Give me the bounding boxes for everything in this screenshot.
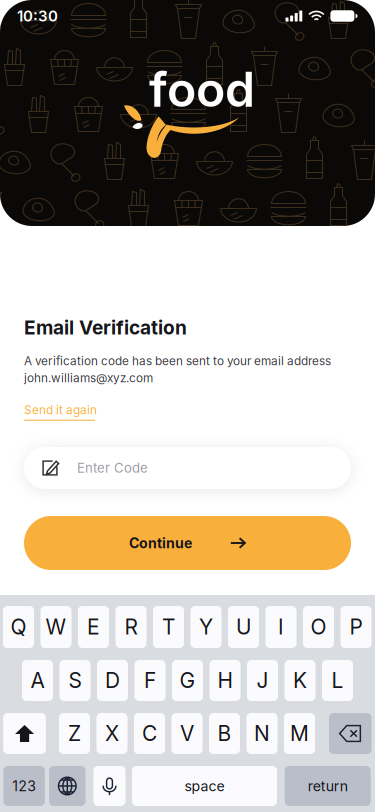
staticText: L: [331, 668, 343, 693]
button[interactable]: U: [228, 606, 259, 648]
button[interactable]: S: [59, 660, 90, 701]
staticText: R: [124, 614, 137, 640]
button[interactable]: H: [209, 660, 240, 701]
button[interactable]: T: [153, 606, 184, 648]
staticText: I: [278, 614, 284, 640]
button[interactable]: Send it again: [24, 403, 97, 421]
button[interactable]: Continue: [24, 516, 351, 570]
staticText: A: [30, 668, 44, 693]
button[interactable]: J: [247, 660, 278, 701]
staticText: O: [310, 614, 326, 640]
staticText: G: [179, 668, 195, 693]
button[interactable]: K: [284, 660, 315, 701]
button[interactable]: X: [96, 713, 127, 754]
staticText: Z: [68, 721, 81, 746]
staticText: S: [68, 668, 81, 693]
button[interactable]: W: [40, 606, 71, 648]
button[interactable]: space: [132, 766, 277, 806]
button[interactable]: E: [78, 606, 109, 648]
button[interactable]: B: [209, 713, 240, 754]
staticText: C: [142, 721, 157, 746]
button[interactable]: Z: [59, 713, 90, 754]
staticText: J: [256, 668, 268, 693]
staticText: john.williams@xyz.com: [24, 371, 153, 385]
button[interactable]: 123: [3, 766, 45, 806]
staticText: D: [105, 668, 120, 693]
staticText: Continue: [129, 534, 192, 551]
staticText: M: [290, 721, 309, 746]
staticText: T: [162, 614, 175, 640]
staticText: 123: [12, 777, 36, 794]
staticText: K: [293, 668, 307, 693]
button[interactable]: Delete: [329, 713, 371, 754]
staticText: food: [149, 60, 255, 118]
button[interactable]: F: [134, 660, 165, 701]
staticText: 10:30: [17, 7, 58, 25]
button[interactable]: N: [246, 713, 277, 754]
staticText: B: [217, 721, 231, 746]
staticText: return: [308, 777, 348, 794]
button[interactable]: Shift: [3, 713, 46, 754]
staticText: E: [87, 614, 100, 640]
button[interactable]: C: [134, 713, 165, 754]
staticText: Email Verification: [24, 316, 187, 339]
staticText: Q: [10, 614, 26, 640]
button[interactable]: R: [115, 606, 146, 648]
button[interactable]: Q: [3, 606, 34, 648]
staticText: N: [254, 721, 270, 746]
button[interactable]: P: [340, 606, 371, 648]
button[interactable]: V: [171, 713, 202, 754]
staticText: Enter Code: [77, 460, 148, 476]
staticText: Y: [199, 614, 213, 640]
staticText: H: [217, 668, 232, 693]
button[interactable]: M: [284, 713, 315, 754]
button[interactable]: Y: [190, 606, 221, 648]
staticText: Send it again: [24, 403, 97, 417]
staticText: A verification code has been sent to you…: [24, 354, 331, 368]
button[interactable]: O: [303, 606, 334, 648]
staticText: V: [180, 721, 194, 746]
staticText: X: [105, 721, 119, 746]
button[interactable]: Switch keyboard: [49, 766, 85, 806]
button[interactable]: D: [97, 660, 128, 701]
staticText: P: [349, 614, 362, 640]
button[interactable]: return: [285, 766, 371, 806]
button[interactable]: Dictate: [93, 766, 125, 806]
staticText: F: [144, 668, 156, 693]
staticText: space: [184, 777, 224, 794]
button[interactable]: A: [22, 660, 53, 701]
button[interactable]: L: [322, 660, 353, 701]
button[interactable]: I: [265, 606, 296, 648]
staticText: U: [236, 614, 251, 640]
button[interactable]: Enter Code: [24, 447, 351, 489]
button[interactable]: G: [172, 660, 203, 701]
staticText: W: [45, 614, 66, 640]
